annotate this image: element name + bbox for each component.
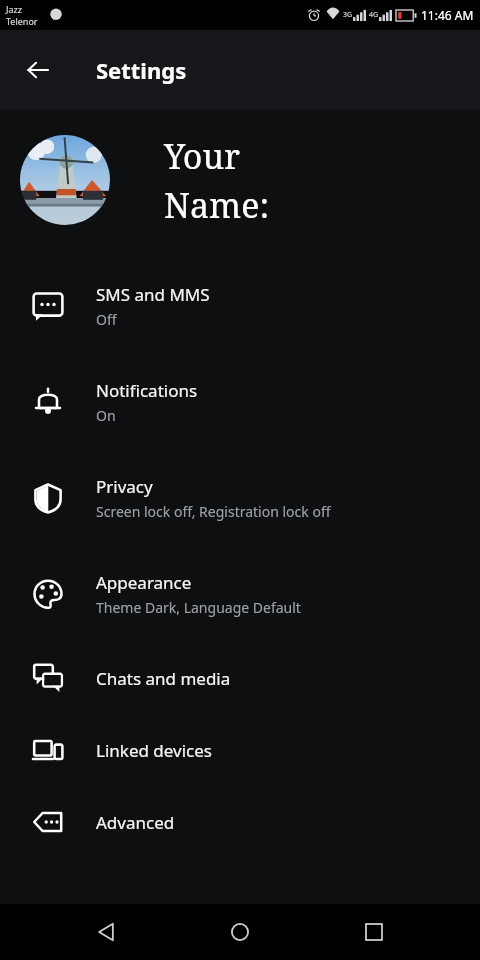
staticText: Chats and media xyxy=(96,667,231,690)
staticText: 11:46 AM xyxy=(421,7,474,23)
button[interactable]: Appearance xyxy=(0,546,480,642)
button[interactable]: Recent apps xyxy=(346,904,402,960)
staticText: Your Name: xyxy=(164,133,344,228)
staticText: Settings xyxy=(96,55,187,85)
button[interactable]: Linked devices xyxy=(0,714,480,786)
staticText: 4G xyxy=(369,10,379,20)
button[interactable]: Privacy xyxy=(0,450,480,546)
staticText: Theme Dark, Language Default xyxy=(96,598,301,617)
button[interactable]: SMS and MMS xyxy=(0,258,480,354)
button[interactable]: Home xyxy=(212,904,268,960)
staticText: Screen lock off, Registration lock off xyxy=(96,502,331,521)
button[interactable]: Your Name: xyxy=(0,110,480,250)
button[interactable]: Chats and media xyxy=(0,642,480,714)
staticText: Notifications xyxy=(96,379,198,402)
button[interactable]: Advanced xyxy=(0,786,480,858)
staticText: Appearance xyxy=(96,571,192,594)
button[interactable]: Notifications xyxy=(0,354,480,450)
button[interactable]: Back xyxy=(78,904,134,960)
button[interactable]: Back xyxy=(14,46,62,94)
staticText: Privacy xyxy=(96,475,153,498)
staticText: 3G xyxy=(343,10,353,20)
staticText: On xyxy=(96,406,116,425)
staticText: Telenor xyxy=(6,15,38,27)
staticText: Off xyxy=(96,310,117,329)
staticText: SMS and MMS xyxy=(96,283,210,306)
staticText: Linked devices xyxy=(96,739,212,762)
staticText: Advanced xyxy=(96,811,175,834)
staticText: Jazz xyxy=(6,3,22,15)
